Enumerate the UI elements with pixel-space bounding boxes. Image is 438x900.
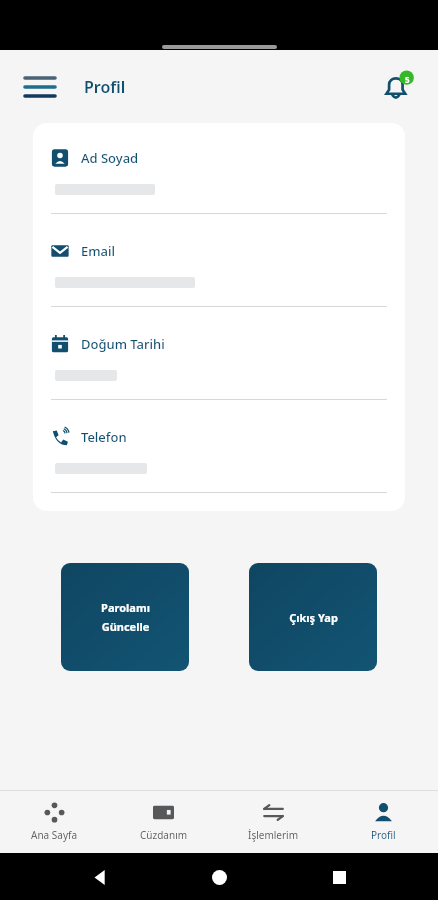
staticText: Ana Sayfa — [31, 828, 78, 842]
staticText: Çıkış Yap — [289, 610, 338, 625]
button[interactable]: Parolamı Güncelle — [61, 563, 189, 671]
staticText: Profil — [84, 76, 126, 98]
button[interactable]: Profil — [328, 791, 438, 853]
staticText: Doğum Tarihi — [81, 335, 165, 353]
staticText: Telefon — [81, 428, 127, 446]
staticText: 5 — [405, 74, 410, 85]
staticText: Profil — [371, 828, 396, 842]
button[interactable]: Çıkış Yap — [249, 563, 377, 671]
staticText: Parolamı Güncelle — [101, 600, 150, 634]
button[interactable]: Ana Sayfa — [0, 791, 109, 853]
button[interactable]: Doğum Tarihi — [51, 335, 387, 428]
button[interactable]: Notifications — [376, 65, 420, 109]
button[interactable]: Cüzdanım — [109, 791, 218, 853]
staticText: Ad Soyad — [81, 149, 139, 167]
staticText: Email — [81, 242, 116, 260]
button[interactable]: Email — [51, 242, 387, 335]
button[interactable]: Menu — [18, 65, 62, 109]
button[interactable]: Ad Soyad — [51, 149, 387, 242]
button[interactable]: Home — [199, 857, 239, 897]
button[interactable]: Telefon — [51, 428, 387, 493]
staticText: Cüzdanım — [140, 828, 188, 842]
button[interactable]: Back — [80, 857, 120, 897]
button[interactable]: Recents — [319, 857, 359, 897]
staticText: İşlemlerim — [248, 828, 299, 842]
button[interactable]: İşlemlerim — [218, 791, 328, 853]
